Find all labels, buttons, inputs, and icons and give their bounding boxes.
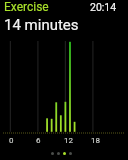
staticText: 14 minutes — [4, 16, 79, 34]
staticText: 0 — [9, 136, 14, 145]
staticText: 6 — [36, 136, 41, 145]
staticText: 18 — [91, 136, 100, 145]
staticText: Exercise — [4, 0, 49, 13]
staticText: 20:14 — [90, 1, 117, 13]
staticText: 12 — [64, 136, 73, 145]
